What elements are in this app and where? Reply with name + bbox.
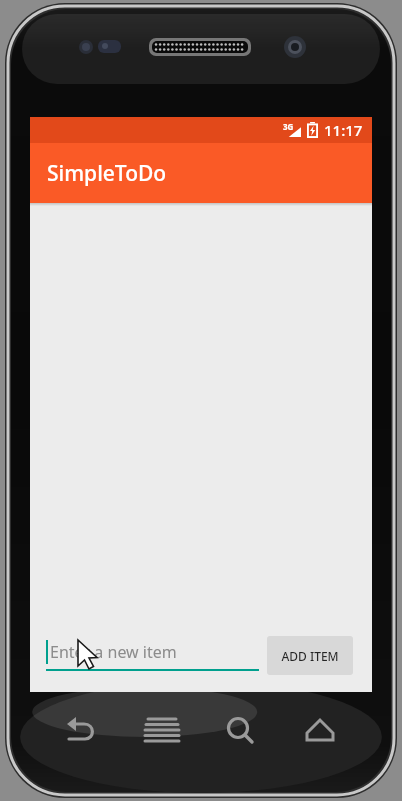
button[interactable]: Menu [140, 708, 184, 752]
staticText: ADD ITEM [281, 648, 339, 664]
button[interactable]: Back [58, 708, 102, 752]
staticText: 3G [283, 121, 294, 132]
button[interactable]: ADD ITEM [267, 636, 353, 675]
staticText: Enter a new item [50, 641, 177, 663]
staticText: SimpleToDo [47, 159, 167, 188]
button[interactable]: Home [298, 708, 342, 752]
button[interactable]: Search [218, 708, 262, 752]
staticText: 11:17 [324, 120, 363, 140]
button[interactable]: Enter a new item [46, 632, 259, 678]
